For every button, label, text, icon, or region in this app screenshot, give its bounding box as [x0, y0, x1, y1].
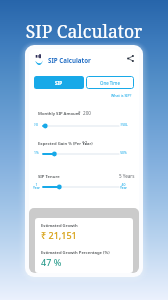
staticText: One Time — [100, 80, 120, 86]
staticText: Estimated Growth Percentage (%) — [41, 250, 110, 256]
staticText: ₹ 21,151 — [41, 229, 77, 241]
staticText: Monthly SIP Amount — [38, 111, 81, 117]
staticText: SIP Calculator — [0, 19, 168, 43]
staticText: ₹0 — [34, 122, 38, 127]
staticText: SIP Calculator — [48, 56, 91, 64]
staticText: ₹ 200 — [78, 110, 91, 116]
staticText: 47 % — [41, 256, 62, 268]
button[interactable]: Share — [125, 53, 136, 64]
button[interactable]: One Time — [86, 76, 134, 89]
staticText: 12 — [82, 140, 88, 146]
staticText: What is SIP? — [111, 93, 132, 98]
button[interactable]: SIP — [34, 76, 84, 89]
staticText: 40 Year — [120, 182, 127, 190]
staticText: ₹50L — [120, 122, 128, 127]
staticText: 5 Years — [119, 173, 135, 179]
staticText: 50% — [120, 150, 127, 155]
button[interactable]: What is SIP? — [111, 93, 132, 98]
staticText: 1 Year — [33, 182, 40, 190]
staticText: SIP — [55, 80, 63, 86]
staticText: Expected Gain % (Per Year) — [38, 141, 93, 147]
staticText: Estimated Growth — [41, 223, 78, 229]
staticText: 1% — [34, 150, 39, 155]
staticText: SIP Tenure — [38, 174, 60, 180]
